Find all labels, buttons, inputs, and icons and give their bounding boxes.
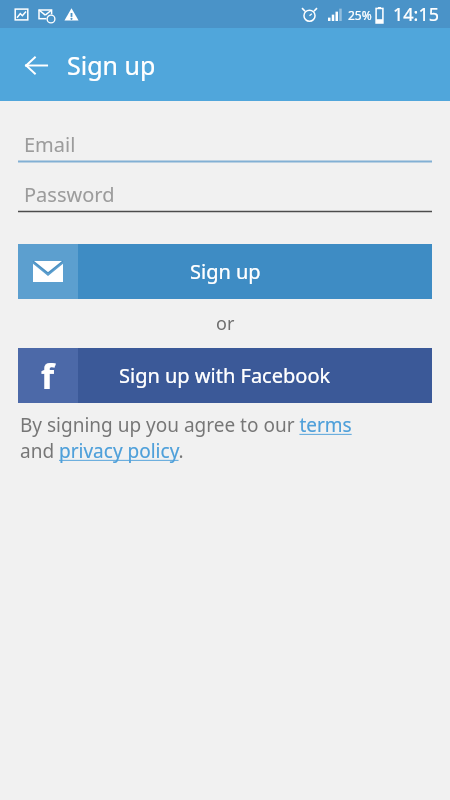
button[interactable]: Password (18, 178, 432, 213)
staticText: or (216, 311, 235, 336)
button[interactable]: Email (18, 128, 432, 163)
button[interactable]: Sign up with email (18, 244, 432, 299)
staticText: and privacy policy. (20, 438, 184, 464)
staticText: Sign up (67, 48, 156, 82)
staticText: f (41, 353, 55, 399)
button[interactable]: Sign up with Facebook (18, 348, 432, 403)
staticText: 14:15 (393, 2, 440, 27)
button[interactable]: By signing up you agree to our terms (20, 412, 432, 464)
staticText: Email (24, 131, 76, 158)
staticText: 25% (348, 7, 372, 23)
staticText: By signing up you agree to our terms (20, 412, 352, 438)
staticText: Password (24, 181, 115, 208)
staticText: Sign up (190, 258, 261, 285)
button[interactable]: Back (11, 40, 61, 90)
staticText: Sign up with Facebook (119, 362, 331, 389)
